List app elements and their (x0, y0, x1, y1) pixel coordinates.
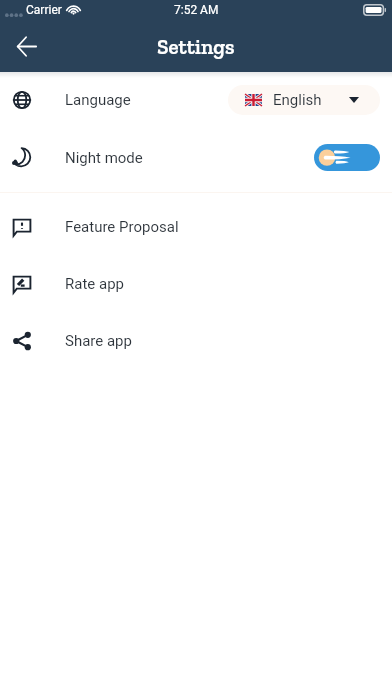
button[interactable]: Night mode (0, 128, 392, 187)
button[interactable]: Back (6, 26, 46, 66)
staticText: Night mode (65, 149, 143, 167)
button[interactable]: Share app (0, 312, 392, 369)
button[interactable]: Feature Proposal (0, 198, 392, 255)
button[interactable]: Language (0, 72, 392, 128)
staticText: Rate app (65, 275, 124, 293)
staticText: Language (65, 91, 131, 109)
staticText: 7:52 AM (174, 3, 219, 17)
staticText: Carrier (26, 3, 62, 17)
button[interactable]: English (228, 85, 380, 115)
button[interactable]: Rate app (0, 255, 392, 312)
staticText: Share app (65, 332, 132, 350)
staticText: English (273, 91, 322, 109)
button[interactable]: Night mode (314, 144, 380, 171)
staticText: Settings (157, 34, 235, 59)
staticText: Feature Proposal (65, 218, 179, 236)
